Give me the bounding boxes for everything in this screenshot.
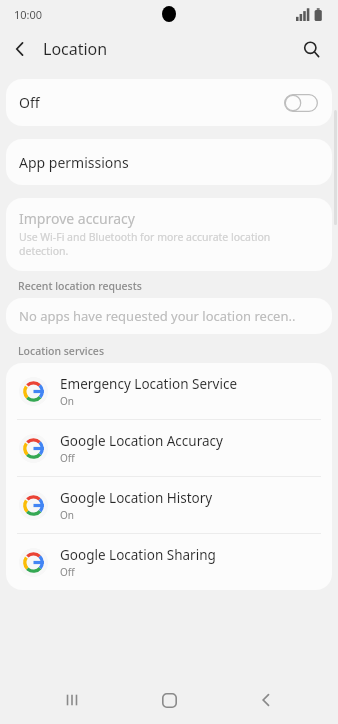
staticText: On xyxy=(60,394,74,408)
button[interactable]: No apps have requested your location rec… xyxy=(6,298,332,334)
staticText: No apps have requested your location rec… xyxy=(19,307,296,325)
button[interactable]: Search xyxy=(291,29,331,69)
staticText: Recent location requests xyxy=(18,279,142,293)
button[interactable]: Home xyxy=(149,680,189,720)
button[interactable]: Recents xyxy=(52,680,92,720)
button[interactable]: Improve accuracy xyxy=(6,198,332,271)
staticText: Google Location Accuracy xyxy=(60,432,223,450)
button[interactable]: Emergency Location Service xyxy=(6,363,332,419)
staticText: On xyxy=(60,508,74,522)
button[interactable]: Google Location History xyxy=(6,477,332,533)
staticText: App permissions xyxy=(19,153,129,172)
staticText: Improve accuracy xyxy=(19,209,135,228)
button[interactable]: App permissions xyxy=(6,139,332,185)
button[interactable]: Back xyxy=(246,680,286,720)
staticText: Emergency Location Service xyxy=(60,375,238,393)
button[interactable]: Off xyxy=(6,79,332,126)
staticText: Google Location Sharing xyxy=(60,546,216,564)
button[interactable]: Google Location Sharing xyxy=(6,534,332,590)
button[interactable]: Back xyxy=(0,29,40,69)
staticText: Off xyxy=(60,565,75,579)
staticText: 10:00 xyxy=(14,7,43,22)
staticText: Google Location History xyxy=(60,489,213,507)
staticText: Use Wi-Fi and Bluetooth for more accurat… xyxy=(19,230,314,258)
button[interactable]: Google Location Accuracy xyxy=(6,420,332,476)
staticText: Location xyxy=(43,38,108,60)
staticText: Location services xyxy=(18,344,104,358)
staticText: Off xyxy=(19,93,40,112)
staticText: Off xyxy=(60,451,75,465)
